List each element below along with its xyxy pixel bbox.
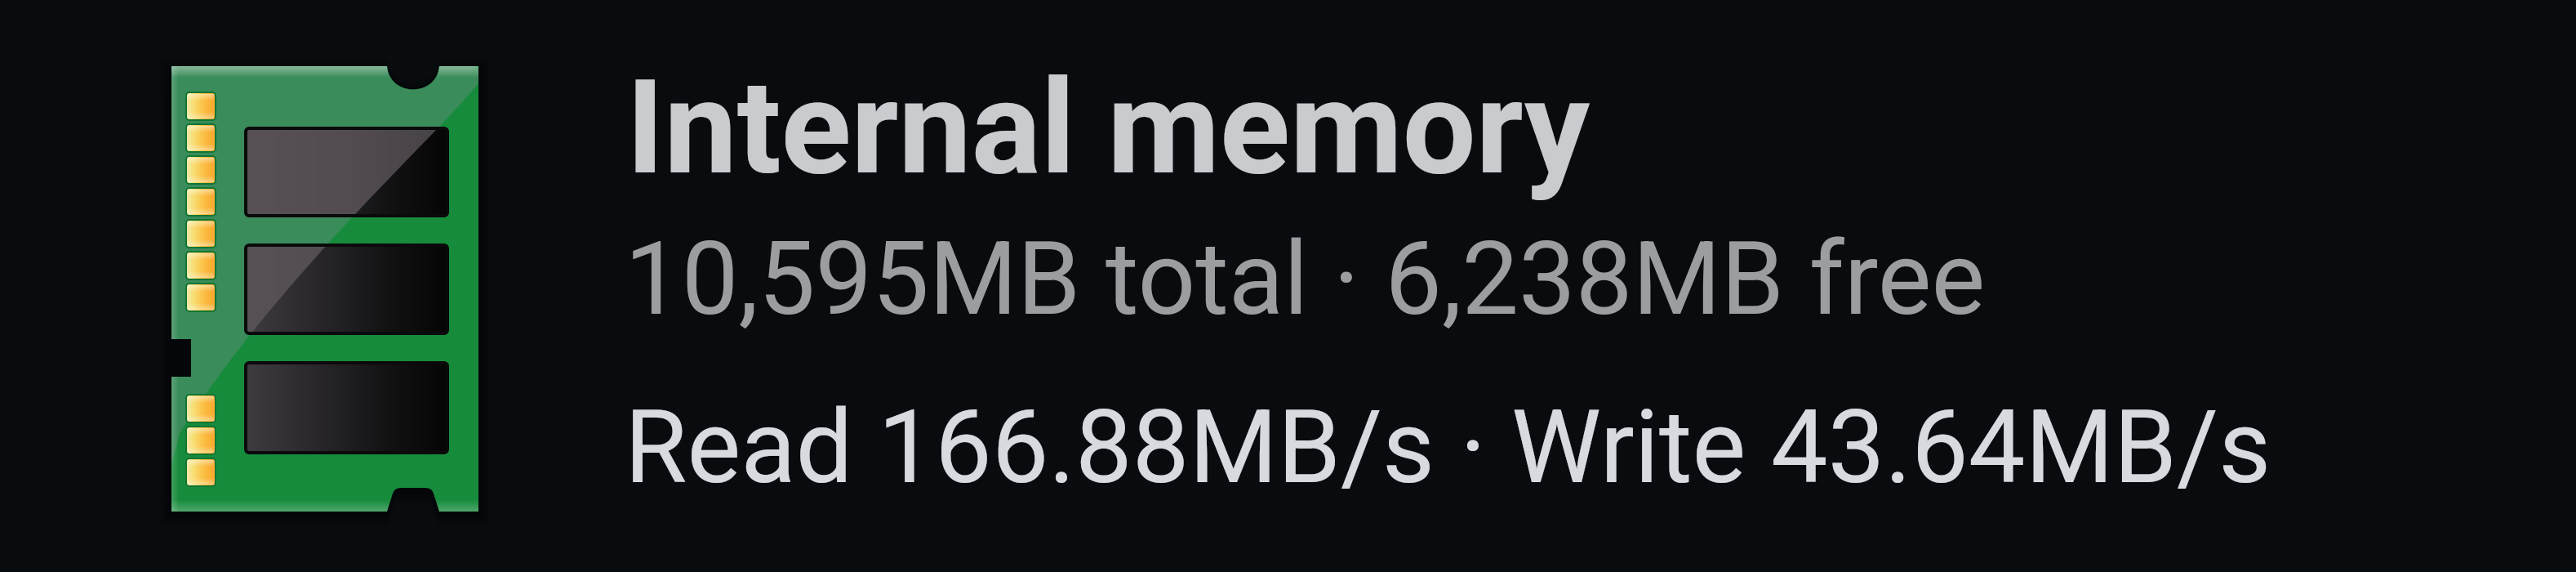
staticText: 10,595MB total · 6,238MB free <box>625 220 1986 338</box>
button[interactable]: Internal memory storage <box>0 0 2576 572</box>
staticText: Internal memory <box>626 51 1591 203</box>
staticText: Read 166.88MB/s · Write 43.64MB/s <box>625 388 2271 507</box>
other: Internal memory storage <box>155 54 495 528</box>
